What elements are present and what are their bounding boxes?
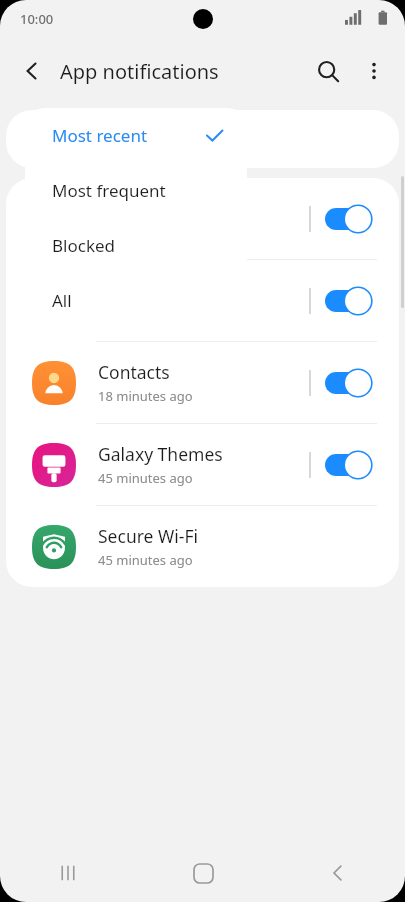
staticText: Contacts [98,360,170,384]
button[interactable]: Notification toggle [325,450,377,480]
button[interactable]: Calendar [6,178,399,259]
staticText: Most recent [52,124,204,147]
staticText: 45 minutes ago [98,551,193,569]
staticText: 5 minutes ago [98,223,186,241]
button[interactable]: Notification toggle [325,286,377,316]
button[interactable]: Contacts [6,342,399,423]
button[interactable]: Home [173,844,233,902]
staticText: Blocked [52,234,225,257]
button[interactable]: Notification toggle [325,204,377,234]
button[interactable]: Back [10,49,54,93]
button[interactable]: Clock [6,260,399,341]
button[interactable]: Galaxy Themes [6,424,399,505]
staticText: Galaxy Themes [98,442,223,466]
button[interactable] [6,110,399,168]
button[interactable]: Blocked [25,218,247,273]
button[interactable]: Recent apps [38,844,98,902]
staticText: 10:00 [20,10,54,28]
button[interactable]: More options [351,48,397,94]
button[interactable]: Back [308,844,368,902]
staticText: 18 minutes ago [98,387,193,405]
staticText: Calendar [98,196,172,220]
staticText: Secure Wi-Fi [98,524,199,548]
button[interactable]: Secure Wi-Fi [6,506,399,587]
button[interactable]: Search [305,48,351,94]
staticText: App notifications [60,58,305,85]
staticText: 45 minutes ago [98,469,193,487]
button[interactable]: Most frequent [25,163,247,218]
button[interactable]: All [25,273,247,328]
staticText: Most frequent [52,179,225,202]
button[interactable]: Notification toggle [325,368,377,398]
button[interactable]: Most recent [25,108,247,163]
staticText: All [52,289,225,312]
